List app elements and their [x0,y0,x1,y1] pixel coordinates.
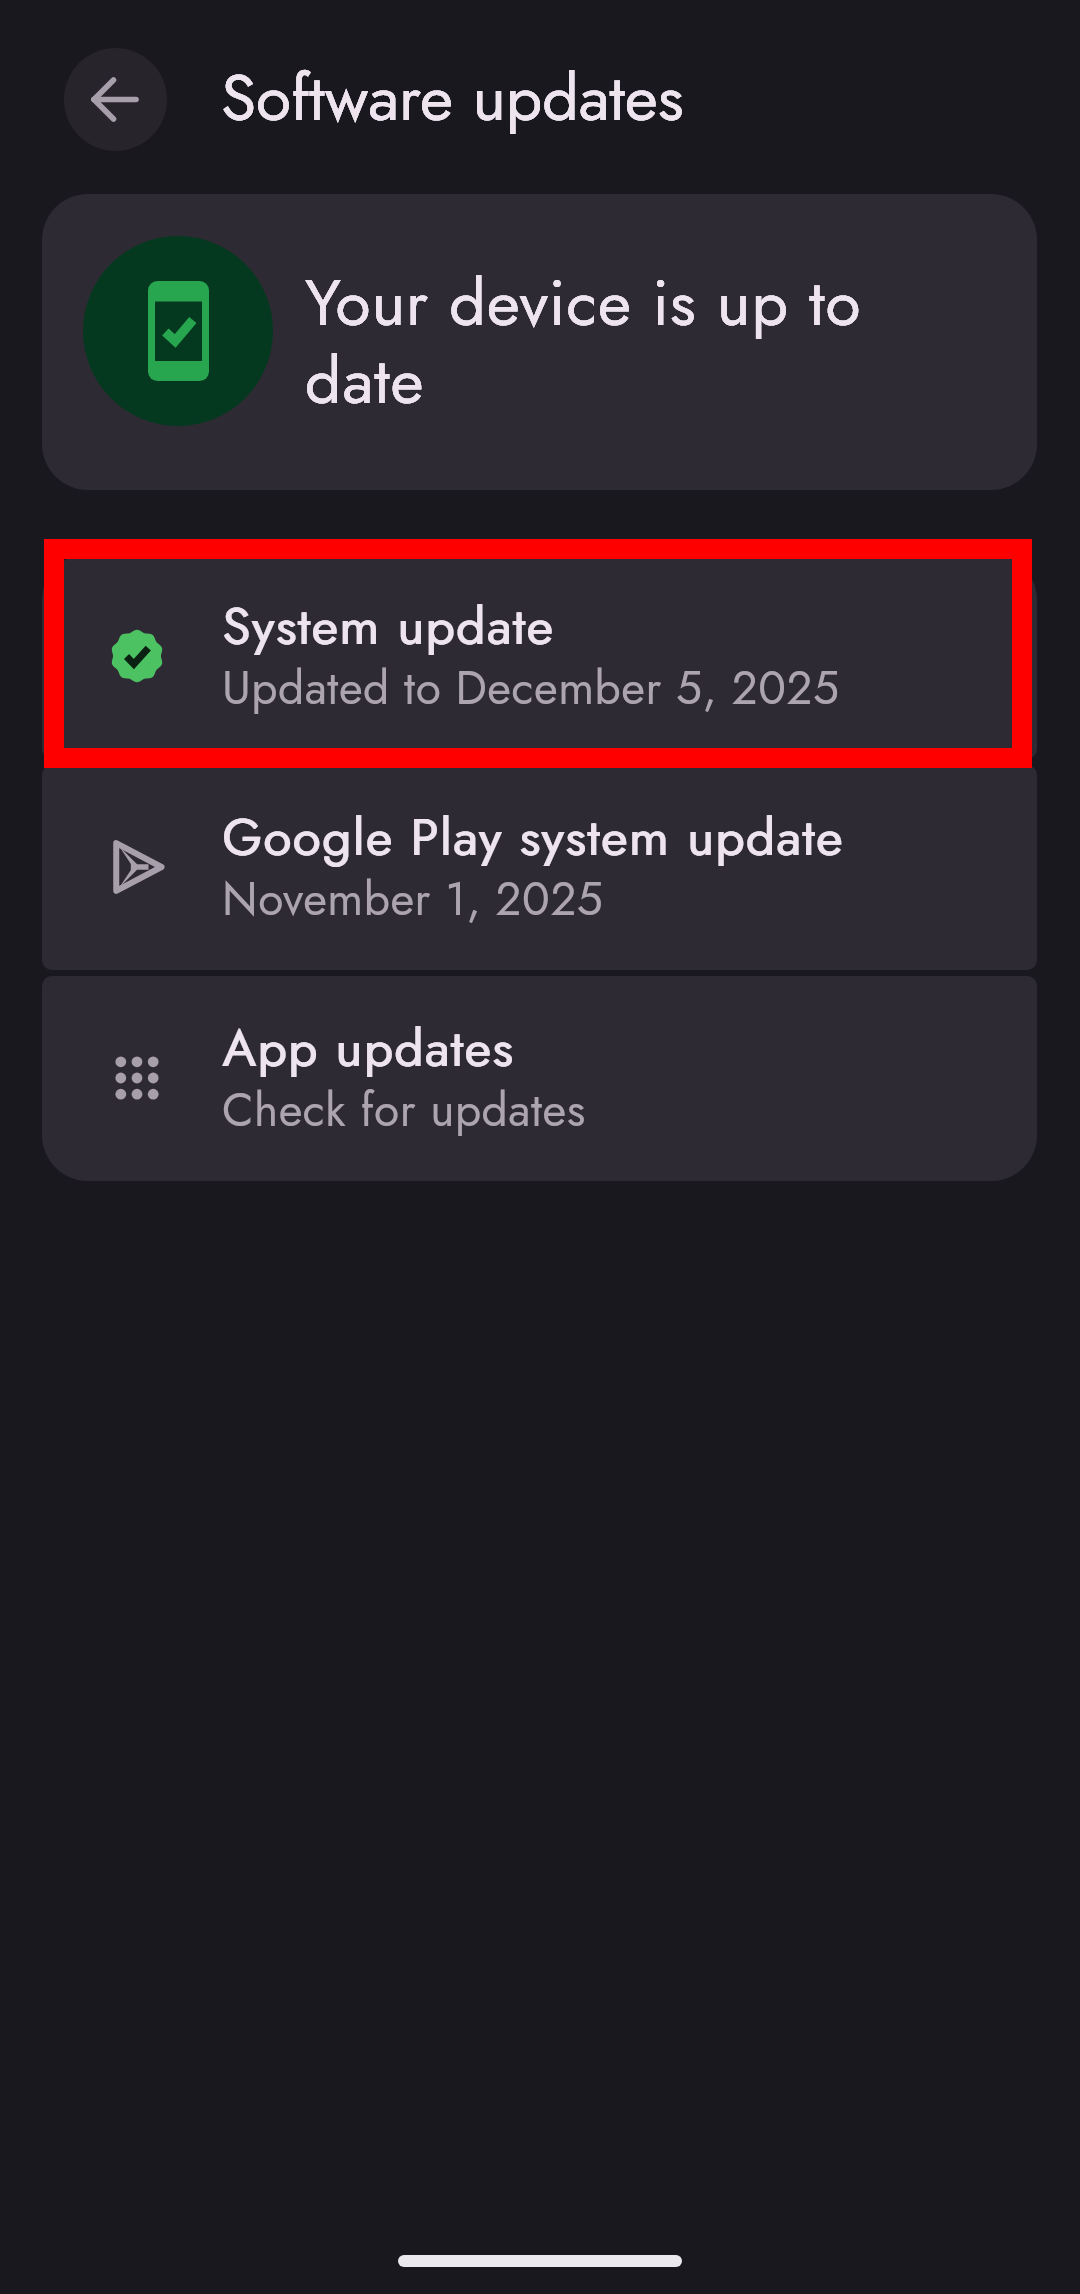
staticText: Software updates [221,52,684,144]
button[interactable]: System update [42,554,1037,759]
staticText: Updated to December 5, 2025 [222,660,840,720]
staticText: System update [223,600,555,660]
staticText: Google Play system update [223,811,845,871]
staticText: Your device is up to date [305,267,905,423]
staticText: App updates [223,1022,516,1082]
staticText: Check for updates [222,1082,586,1142]
staticText: Your device is up to date [305,267,905,423]
button[interactable]: Google Play system update [42,765,1037,970]
button[interactable]: Back [64,48,167,151]
staticText: November 1, 2025 [222,871,604,931]
staticText: Software updates [221,52,684,144]
button[interactable]: App updates [42,976,1037,1181]
staticText: System update [222,600,554,660]
button[interactable]: Your device is up to date [42,194,1037,490]
staticText: App updates [222,1022,515,1082]
staticText: Google Play system update [222,811,844,871]
